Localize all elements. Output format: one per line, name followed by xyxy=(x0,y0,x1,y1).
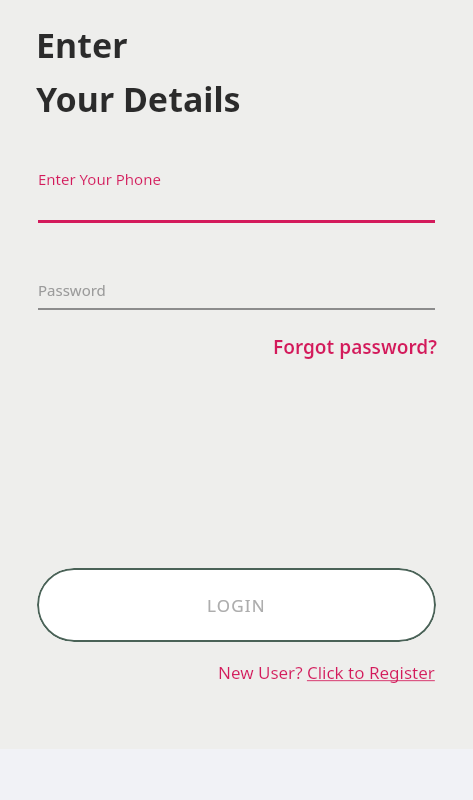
staticText: Enter Your Details xyxy=(36,22,241,122)
staticText: Password xyxy=(38,280,106,300)
button[interactable]: New User? Click to Register xyxy=(218,661,435,684)
button[interactable]: LOGIN xyxy=(37,568,436,642)
button[interactable]: Enter Your Phone xyxy=(38,169,435,223)
staticText: Forgot password? xyxy=(272,334,437,360)
button[interactable]: Forgot password? xyxy=(272,334,437,360)
staticText: Enter Your Phone xyxy=(38,169,161,189)
staticText: New User? Click to Register xyxy=(218,661,435,684)
button[interactable]: Password xyxy=(38,280,435,310)
staticText: LOGIN xyxy=(207,594,266,617)
